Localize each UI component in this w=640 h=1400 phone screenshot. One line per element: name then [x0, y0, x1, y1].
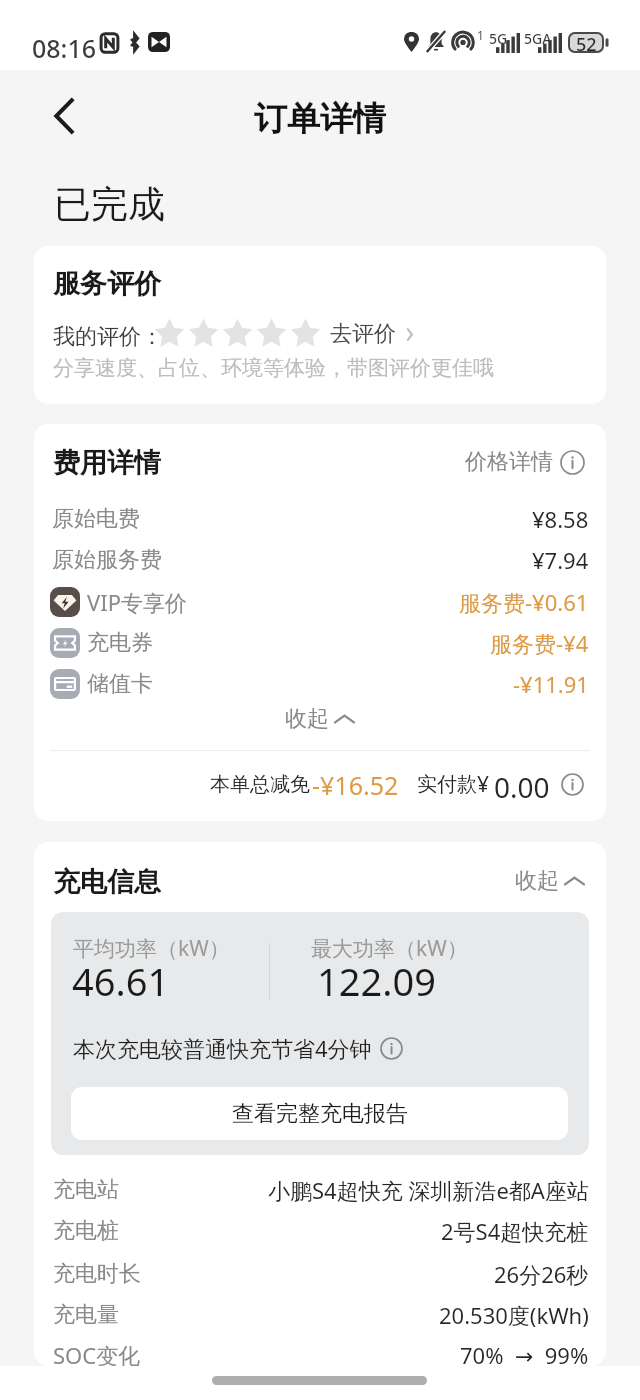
- staticText: 服务费-¥4: [490, 628, 589, 658]
- button[interactable]: 储值卡: [50, 665, 589, 703]
- staticText: 46.61: [72, 955, 170, 1007]
- staticText: 服务费-¥0.61: [459, 587, 589, 617]
- staticText: 20.530度(kWh): [439, 1300, 589, 1330]
- button[interactable]: VIP专享价: [50, 583, 589, 621]
- staticText: 价格详情: [465, 448, 553, 476]
- staticText: 08:16: [32, 31, 97, 65]
- staticText: 52: [576, 32, 597, 53]
- staticText: 费用详情: [53, 446, 161, 478]
- staticText: -¥11.91: [513, 669, 589, 699]
- staticText: 充电券: [87, 629, 153, 657]
- staticText: 平均功率（kW）: [73, 934, 230, 963]
- staticText: 订单详情: [254, 98, 386, 140]
- staticText: 充电信息: [53, 865, 161, 897]
- staticText: 1: [477, 27, 484, 43]
- staticText: 储值卡: [87, 670, 153, 698]
- button[interactable]: 原始电费: [50, 500, 589, 538]
- button[interactable]: Back: [38, 90, 90, 142]
- staticText: VIP专享价: [87, 587, 187, 617]
- staticText: 去评价: [330, 320, 396, 348]
- staticText: 5G: [489, 29, 508, 48]
- staticText: ¥: [477, 770, 490, 799]
- staticText: 本次充电较普通快充节省4分钟: [73, 1033, 372, 1063]
- staticText: 原始服务费: [52, 546, 162, 574]
- staticText: 70% → 99%: [460, 1340, 589, 1366]
- staticText: 充电量: [53, 1301, 119, 1329]
- staticText: 充电时长: [53, 1260, 141, 1288]
- staticText: 充电桩: [53, 1217, 119, 1245]
- staticText: 小鹏S4超快充 深圳新浩e都A座站: [268, 1175, 589, 1205]
- staticText: 收起: [285, 705, 329, 733]
- button[interactable]: 充电券: [50, 624, 589, 662]
- staticText: 0.00: [494, 768, 550, 800]
- staticText: 收起: [515, 867, 559, 895]
- staticText: ¥7.94: [532, 545, 589, 575]
- staticText: 2号S4超快充桩: [441, 1216, 589, 1246]
- staticText: SOC变化: [53, 1340, 141, 1366]
- staticText: 122.09: [317, 955, 436, 1007]
- button[interactable]: 收起: [515, 865, 585, 897]
- staticText: 26分26秒: [494, 1259, 589, 1289]
- staticText: 最大功率（kW）: [311, 934, 468, 963]
- staticText: 服务评价: [53, 267, 161, 301]
- staticText: 查看完整充电报告: [232, 1100, 408, 1128]
- staticText: 实付款: [417, 772, 477, 797]
- button[interactable]: 查看完整充电报告: [71, 1087, 568, 1140]
- button[interactable]: 去评价: [330, 318, 415, 350]
- staticText: 分享速度、占位、环境等体验，带图评价更佳哦: [53, 355, 494, 381]
- staticText: 5GA: [524, 29, 552, 48]
- staticText: -¥16.52: [312, 768, 399, 800]
- staticText: 我的评价：: [53, 323, 163, 351]
- staticText: 充电站: [53, 1176, 119, 1204]
- button[interactable]: 原始服务费: [50, 541, 589, 579]
- staticText: 已完成: [54, 181, 165, 228]
- staticText: 本单总减免: [210, 772, 310, 797]
- button[interactable]: 收起: [34, 702, 606, 736]
- staticText: ¥8.58: [532, 504, 589, 534]
- button[interactable]: 价格详情: [465, 446, 585, 478]
- staticText: 原始电费: [52, 505, 140, 533]
